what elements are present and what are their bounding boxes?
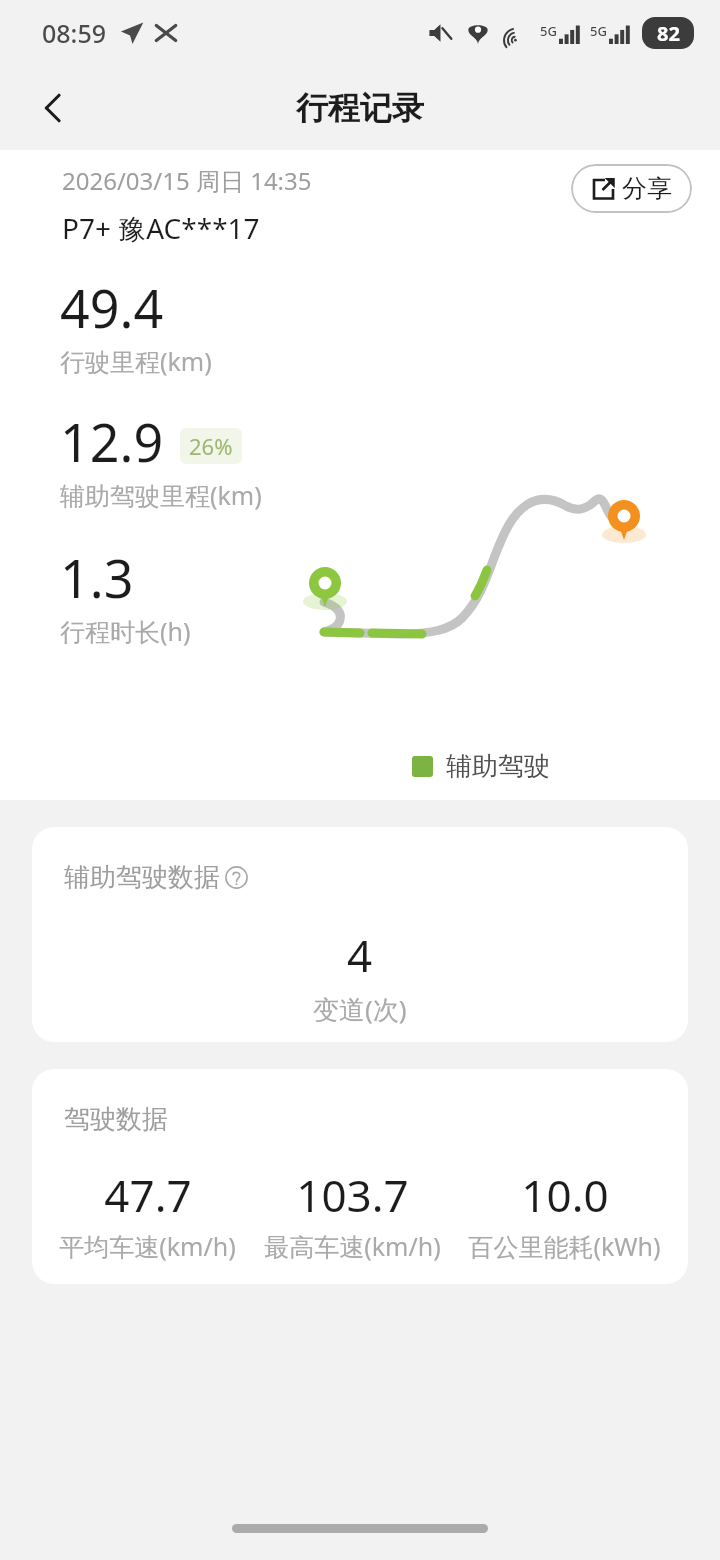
staticText: 河南省郑州市二七区金水源街道绿水路 <box>105 882 564 916</box>
staticText: 103.7 <box>296 1165 409 1225</box>
button[interactable]: 河南省郑州市二七区金水源街道绿水路 <box>105 876 720 922</box>
staticText: P7+ 豫AC***17 <box>62 209 260 247</box>
staticText: 变道(次) <box>313 991 407 1027</box>
button[interactable]: 驾驶数据 <box>32 1069 688 1284</box>
staticText: 4 <box>347 925 373 985</box>
staticText: 河南省郑州市新密市尖山风景区 <box>105 824 483 858</box>
staticText: 行驶里程(km) <box>60 344 212 378</box>
staticText: 百公里能耗(kWh) <box>468 1229 661 1263</box>
staticText: 辅助驾驶 <box>446 750 550 783</box>
staticText: 82 <box>657 20 680 47</box>
staticText: 47.7 <box>104 1165 192 1225</box>
staticText: 最高车速(km/h) <box>264 1229 441 1263</box>
staticText: 辅助驾驶里程(km) <box>60 478 262 512</box>
staticText: 10.0 <box>521 1165 609 1225</box>
staticText: 1.3 <box>60 542 134 613</box>
button[interactable]: Back <box>24 78 84 138</box>
staticText: 分享 <box>622 173 672 204</box>
staticText: 26% <box>189 431 233 461</box>
staticText: 49.4 <box>60 272 164 343</box>
staticText: 5G <box>540 22 557 40</box>
staticText: 平均车速(km/h) <box>59 1229 236 1263</box>
staticText: 行程记录 <box>296 88 424 128</box>
staticText: 2026/03/15 周日 14:35 <box>62 164 312 197</box>
staticText: 12.9 <box>60 406 164 477</box>
staticText: 08:59 <box>42 16 107 50</box>
button[interactable]: 分享 <box>571 164 692 213</box>
staticText: 辅助驾驶数据 <box>64 861 220 894</box>
staticText: 5G <box>590 22 607 40</box>
button[interactable]: 河南省郑州市新密市尖山风景区 <box>105 818 720 864</box>
button[interactable]: 辅助驾驶数据 <box>32 827 688 1042</box>
staticText: 驾驶数据 <box>64 1103 168 1136</box>
staticText: 行程时长(h) <box>60 614 191 648</box>
